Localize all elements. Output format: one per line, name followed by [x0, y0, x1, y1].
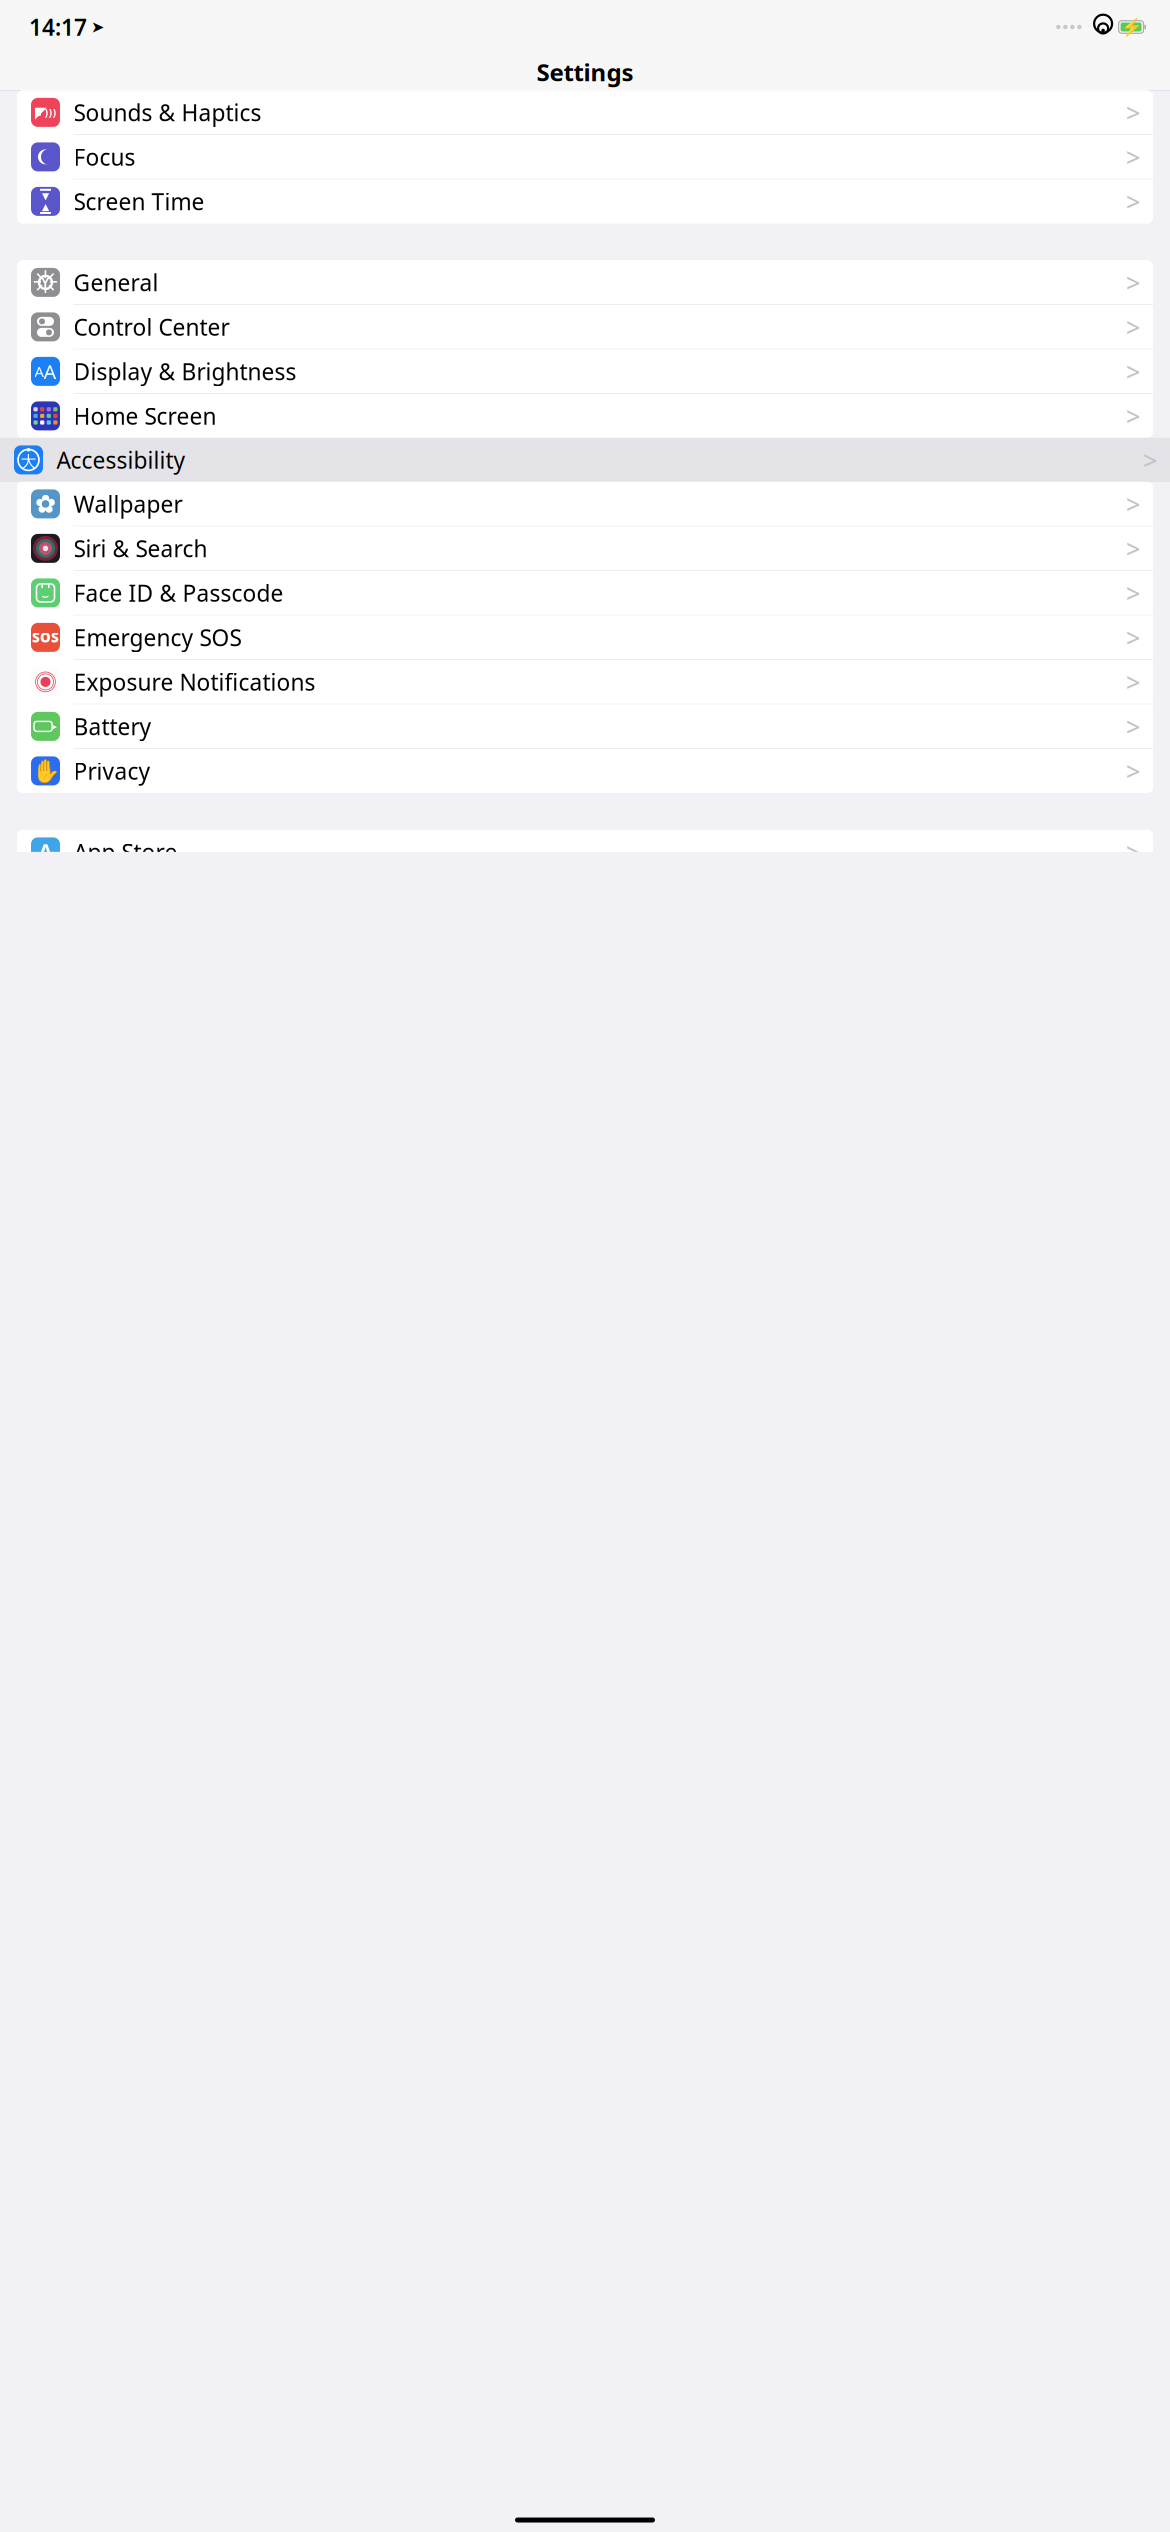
staticText: ⌣	[41, 590, 49, 602]
button[interactable]: A	[17, 830, 1153, 874]
button[interactable]: ▼	[17, 179, 1153, 223]
staticText: >	[1126, 487, 1140, 521]
staticText: Focus	[73, 142, 135, 172]
staticText: Wallpaper	[73, 489, 182, 519]
staticText: Accessibility	[56, 445, 185, 475]
staticText: A	[34, 362, 43, 381]
staticText: Emergency SOS	[73, 622, 241, 652]
button[interactable]: ✿	[17, 482, 1153, 526]
button[interactable]: Siri & Search	[17, 526, 1153, 571]
staticText: >	[1126, 185, 1140, 218]
staticText: Sounds & Haptics	[73, 97, 261, 127]
staticText: ✿	[35, 489, 56, 518]
staticText: Privacy	[73, 756, 150, 786]
staticText: ▲	[42, 201, 49, 212]
staticText: Face ID & Passcode	[73, 578, 283, 608]
button[interactable]: ◤	[17, 90, 1153, 135]
staticText: Siri & Search	[73, 533, 207, 563]
button[interactable]: ✳	[17, 260, 1153, 305]
staticText: ➤	[91, 18, 104, 36]
staticText: Settings	[536, 56, 633, 88]
staticText: 14:17	[29, 12, 87, 42]
staticText: Battery	[73, 711, 151, 741]
staticText: ✋	[31, 758, 59, 784]
button[interactable]: ⌣	[17, 571, 1153, 615]
staticText: >	[1126, 576, 1140, 610]
staticText: >	[1126, 532, 1140, 565]
staticText: >	[1143, 443, 1157, 477]
staticText: >	[1126, 710, 1140, 743]
staticText: ◤	[34, 103, 46, 121]
staticText: Y	[41, 274, 49, 290]
button[interactable]: Control Center	[17, 305, 1153, 349]
staticText: A	[43, 358, 56, 385]
staticText: >	[1126, 621, 1140, 654]
staticText: ⚡	[1121, 17, 1143, 37]
staticText: >	[1126, 96, 1140, 129]
staticText: A	[37, 836, 53, 868]
staticText: )))	[44, 105, 56, 119]
button[interactable]: ▸	[17, 704, 1153, 749]
staticText: 大	[20, 452, 36, 472]
button[interactable]: 大	[0, 438, 1170, 482]
staticText: Control Center	[73, 312, 229, 342]
staticText: Home Screen	[73, 401, 216, 431]
staticText: Exposure Notifications	[73, 667, 315, 697]
button[interactable]: A	[17, 349, 1153, 394]
button[interactable]: ✋	[17, 749, 1153, 793]
staticText: ▸	[53, 722, 57, 731]
staticText: SOS	[32, 628, 59, 646]
staticText: App Store	[73, 837, 177, 867]
staticText: >	[1126, 399, 1140, 433]
staticText: General	[73, 267, 158, 297]
button[interactable]: Home Screen	[17, 394, 1153, 438]
staticText: ▼	[42, 191, 49, 201]
button[interactable]: SOS	[17, 615, 1153, 660]
staticText: >	[1126, 355, 1140, 388]
button[interactable]: Exposure Notifications	[17, 660, 1153, 704]
staticText: Screen Time	[73, 186, 204, 216]
staticText: >	[1126, 310, 1140, 344]
staticText: >	[1126, 835, 1140, 869]
button[interactable]: Focus	[17, 135, 1153, 179]
staticText: ✳	[32, 264, 59, 300]
staticText: >	[1126, 140, 1140, 174]
staticText: >	[1126, 754, 1140, 788]
staticText: >	[1126, 266, 1140, 299]
staticText: >	[1126, 665, 1140, 699]
staticText: Display & Brightness	[73, 356, 296, 386]
